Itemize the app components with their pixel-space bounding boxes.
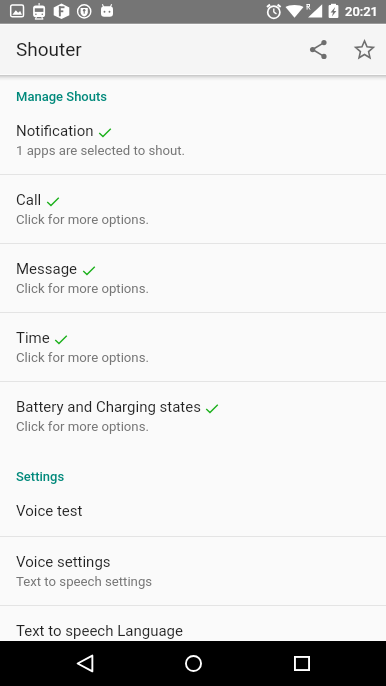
staticText: 20:21	[345, 4, 379, 19]
staticText: Time	[16, 329, 50, 347]
staticText: Click for more options.	[16, 419, 149, 434]
staticText: Text to speech settings	[16, 574, 153, 589]
staticText: Click for more options.	[16, 350, 149, 365]
staticText: Manage Shouts	[16, 89, 108, 104]
button[interactable]: Notification	[0, 106, 386, 174]
button[interactable]: Share	[296, 27, 340, 71]
button[interactable]: Favorite	[342, 27, 386, 71]
button[interactable]: Text to speech Language	[0, 606, 386, 641]
staticText: Click for more options.	[16, 281, 149, 296]
button[interactable]: Recents	[279, 641, 324, 686]
button[interactable]: Back	[62, 641, 107, 686]
button[interactable]: Message	[0, 244, 386, 312]
button[interactable]: Time	[0, 313, 386, 381]
staticText: Voice settings	[16, 553, 111, 571]
button[interactable]: Voice settings	[0, 537, 386, 605]
button[interactable]: Battery and Charging states	[0, 382, 386, 450]
staticText: 1 apps are selected to shout.	[16, 143, 186, 158]
staticText: Message	[16, 260, 78, 278]
staticText: Notification	[16, 122, 94, 140]
staticText: Call	[16, 191, 42, 209]
staticText: Voice test	[16, 502, 83, 520]
staticText: Shouter	[16, 38, 82, 60]
staticText: Text to speech Language	[16, 622, 183, 640]
button[interactable]: Voice test	[0, 486, 386, 536]
staticText: Click for more options.	[16, 212, 149, 227]
button[interactable]: Home	[171, 641, 216, 686]
staticText: Settings	[16, 469, 65, 484]
staticText: Battery and Charging states	[16, 398, 201, 416]
button[interactable]: Call	[0, 175, 386, 243]
